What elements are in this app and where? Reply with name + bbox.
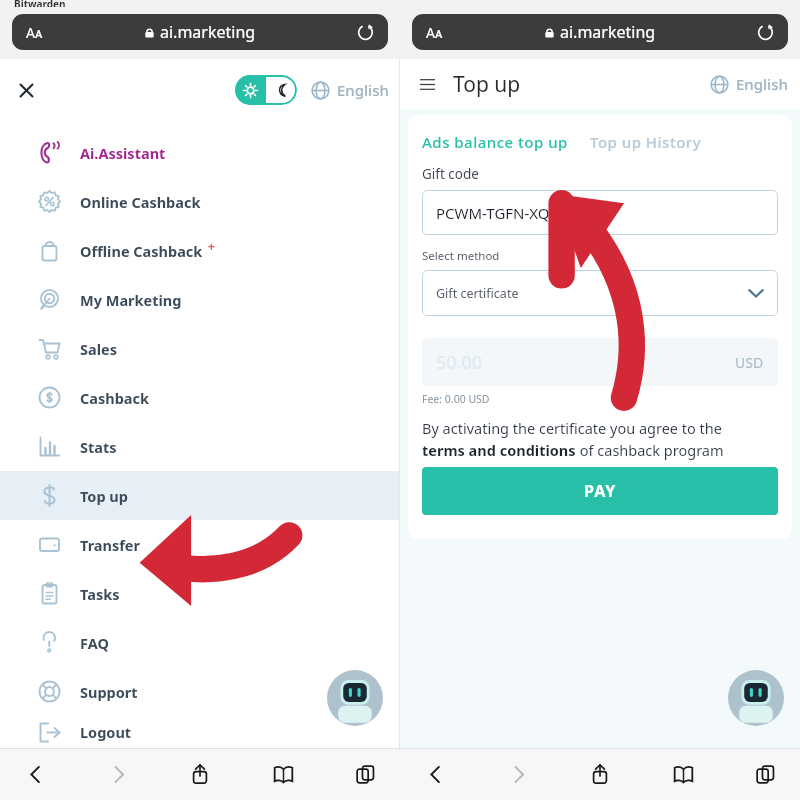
button[interactable]: PCWM-TGFN-XQ04-SHTN <box>422 190 778 235</box>
staticText: Support <box>80 682 138 702</box>
button[interactable]: Bookmarks <box>266 757 300 791</box>
staticText: Select method <box>422 248 500 264</box>
staticText: Logout <box>80 722 132 742</box>
staticText: ai.marketing <box>160 21 256 43</box>
button[interactable]: Close <box>10 74 42 106</box>
button[interactable]: Stats <box>0 422 399 471</box>
button[interactable]: English <box>311 80 389 100</box>
button[interactable]: Support <box>0 667 399 716</box>
staticText: Sales <box>80 339 117 359</box>
button[interactable]: Tasks <box>0 569 399 618</box>
button[interactable]: Back <box>18 757 52 791</box>
staticText: My Marketing <box>80 290 182 310</box>
staticText: ai.marketing <box>560 21 656 43</box>
button[interactable]: Sales <box>0 324 399 373</box>
staticText: Stats <box>80 437 117 457</box>
staticText: Fee: 0.00 USD <box>422 392 490 406</box>
button[interactable]: FAQ <box>0 618 399 667</box>
staticText: Gift code <box>422 165 479 183</box>
button[interactable]: Forward <box>101 757 135 791</box>
staticText: Top up <box>453 70 521 99</box>
staticText: Offline Cashback <box>80 241 203 261</box>
staticText: English <box>337 80 389 100</box>
button[interactable]: Ai assistant <box>327 670 383 726</box>
button[interactable]: Logout <box>0 716 399 748</box>
staticText: of cashback program <box>576 440 724 460</box>
staticText: Aᴀ <box>26 23 43 42</box>
staticText: Online Cashback <box>80 192 201 212</box>
staticText: + <box>208 238 215 254</box>
button[interactable]: Share <box>583 757 617 791</box>
button[interactable]: Back <box>418 757 452 791</box>
button[interactable]: Theme toggle <box>235 75 297 105</box>
button[interactable]: Aᴀ <box>412 14 788 50</box>
button[interactable]: 50.00 <box>422 338 778 386</box>
staticText: Transfer <box>80 535 140 555</box>
button[interactable]: Tabs <box>748 757 782 791</box>
button[interactable]: Aᴀ <box>12 14 388 50</box>
staticText: 50.00 <box>436 350 483 375</box>
button[interactable]: English <box>710 74 788 94</box>
button[interactable]: My Marketing <box>0 275 399 324</box>
button[interactable]: Forward <box>501 757 535 791</box>
button[interactable]: Top up History <box>590 132 702 152</box>
staticText: Cashback <box>80 388 150 408</box>
button[interactable]: PAY <box>422 467 778 515</box>
button[interactable]: terms and conditions <box>422 440 576 460</box>
staticText: English <box>736 74 788 94</box>
button[interactable]: Ads balance top up <box>422 132 568 152</box>
staticText: USD <box>735 353 764 372</box>
staticText: Ai.Assistant <box>80 143 166 163</box>
staticText: By activating the certificate you agree … <box>422 418 722 438</box>
button[interactable]: Bookmarks <box>666 757 700 791</box>
button[interactable]: Ai.Assistant <box>0 128 399 177</box>
staticText: Gift certificate <box>436 285 519 302</box>
button[interactable]: Offline Cashback <box>0 226 399 275</box>
button[interactable]: Gift certificate <box>422 270 778 316</box>
staticText: FAQ <box>80 633 109 653</box>
button[interactable]: Menu <box>412 69 442 99</box>
button[interactable]: Tabs <box>348 757 382 791</box>
button[interactable]: Online Cashback <box>0 177 399 226</box>
button[interactable]: Transfer <box>0 520 399 569</box>
button[interactable]: Cashback <box>0 373 399 422</box>
staticText: PCWM-TGFN-XQ04-SHTN <box>436 203 611 223</box>
staticText: Tasks <box>80 584 120 604</box>
button[interactable]: Top up <box>0 471 399 520</box>
staticText: Bitwarden <box>14 0 66 7</box>
button[interactable]: Share <box>183 757 217 791</box>
staticText: PAY <box>584 480 617 502</box>
button[interactable]: Ai assistant <box>728 670 784 726</box>
staticText: Aᴀ <box>426 23 443 42</box>
staticText: Top up <box>80 486 128 506</box>
